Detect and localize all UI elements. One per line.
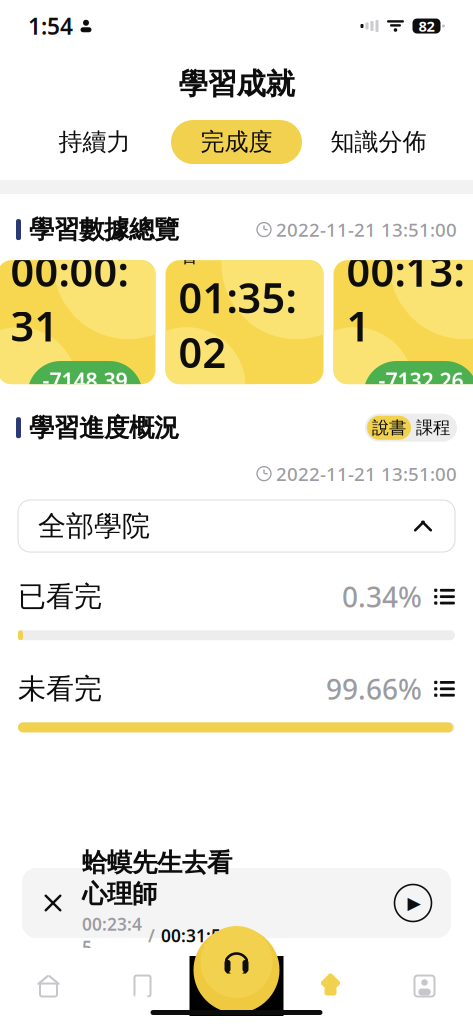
button[interactable]: 全部學院 xyxy=(18,500,455,552)
staticText: 知識分佈 xyxy=(330,127,426,157)
staticText: 近一週累積觀看 xyxy=(178,218,298,268)
staticText: 00:13:1 xyxy=(346,243,464,353)
staticText: 持續力 xyxy=(58,127,130,157)
button[interactable]: 課程 xyxy=(411,416,455,440)
staticText: 00:00:31 xyxy=(10,243,128,353)
staticText: 課程 xyxy=(416,417,450,438)
staticText: 本日累積觀看 xyxy=(10,217,130,241)
button[interactable]: 持續力 xyxy=(29,120,160,164)
staticText: 完成度 xyxy=(200,127,272,157)
staticText: -7148.39% xyxy=(42,366,127,423)
button[interactable]: 本日累積觀看 xyxy=(0,260,155,384)
button[interactable]: 知識分佈 xyxy=(313,120,444,164)
staticText: 全部學院 xyxy=(38,509,150,543)
button[interactable]: 書籍平均觀看 xyxy=(333,260,473,384)
staticText: 說書 xyxy=(372,417,406,438)
button[interactable]: 學習成就 xyxy=(283,956,377,1016)
staticText: 2022-11-21 13:51:00 xyxy=(276,461,457,486)
staticText: 82 xyxy=(418,16,434,36)
button[interactable]: 個人檔案 xyxy=(377,956,471,1016)
staticText: 學習數據總覽 xyxy=(29,214,179,245)
staticText: / xyxy=(148,924,155,947)
button[interactable]: 未看完 詳細清單 xyxy=(434,680,455,697)
button[interactable]: 關閉播放器 xyxy=(40,890,66,916)
button[interactable]: 播放 xyxy=(393,883,433,923)
button[interactable]: 說書 xyxy=(367,416,411,440)
staticText: 未看完 xyxy=(18,672,102,706)
staticText: 學習進度概況 xyxy=(29,412,179,443)
staticText: 0.34% xyxy=(342,578,422,615)
staticText: 01:35:02 xyxy=(178,270,296,379)
staticText: -7132.26% xyxy=(378,366,463,423)
staticText: 99.66% xyxy=(326,670,422,707)
button[interactable]: 近一週累積觀看 xyxy=(165,260,323,384)
button[interactable]: 完成度 xyxy=(171,120,302,164)
staticText: 蛤蟆先生去看心理師 xyxy=(82,847,232,910)
staticText: ▶ xyxy=(407,893,420,913)
staticText: 書籍平均觀看 xyxy=(346,217,466,241)
staticText: 00:31:56 xyxy=(161,924,231,947)
staticText: 已看完 xyxy=(18,579,102,614)
staticText: 學習成就 xyxy=(178,66,294,102)
staticText: 00:23:45 xyxy=(82,913,142,959)
button[interactable]: 首頁 xyxy=(1,956,95,1016)
button[interactable]: 書籤 xyxy=(95,956,189,1016)
staticText: 1:54 xyxy=(28,11,73,41)
button[interactable]: 播放器 xyxy=(190,916,282,1008)
staticText: 2022-11-21 13:51:00 xyxy=(276,217,457,242)
button[interactable]: 已看完 詳細清單 xyxy=(434,588,455,605)
